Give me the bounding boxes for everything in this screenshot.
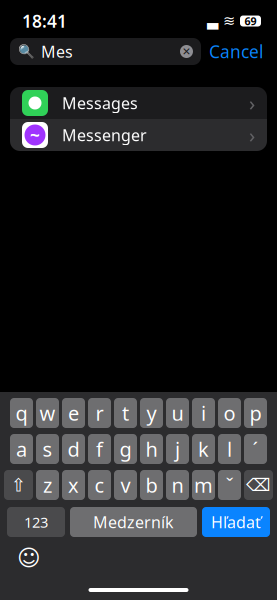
button[interactable]: i bbox=[192, 398, 215, 428]
staticText: g bbox=[119, 436, 131, 462]
staticText: y bbox=[146, 400, 156, 426]
staticText: h bbox=[145, 436, 157, 462]
staticText: v bbox=[120, 472, 130, 498]
button[interactable]: d bbox=[62, 434, 85, 464]
staticText: n bbox=[171, 472, 183, 498]
button[interactable]: Messages bbox=[10, 87, 267, 119]
staticText: o bbox=[223, 400, 235, 426]
button[interactable]: Clear text bbox=[180, 45, 193, 58]
button[interactable]: o bbox=[218, 398, 241, 428]
staticText: ⇧ bbox=[10, 474, 26, 496]
button[interactable]: ˇ bbox=[218, 470, 241, 500]
button[interactable]: Emoji bbox=[16, 545, 42, 571]
staticText: c bbox=[94, 472, 104, 498]
staticText: s bbox=[42, 436, 52, 462]
staticText: ▃ bbox=[207, 13, 218, 29]
button[interactable]: x bbox=[62, 470, 85, 500]
staticText: › bbox=[249, 90, 255, 116]
staticText: 123 bbox=[24, 512, 48, 532]
button[interactable]: n bbox=[166, 470, 189, 500]
button[interactable]: m bbox=[192, 470, 215, 500]
staticText: › bbox=[249, 122, 255, 148]
button[interactable]: Delete bbox=[244, 470, 273, 500]
button[interactable]: l bbox=[218, 434, 241, 464]
button[interactable]: c bbox=[88, 470, 111, 500]
staticText: u bbox=[171, 400, 183, 426]
staticText: ≋ bbox=[223, 13, 235, 29]
button[interactable]: z bbox=[36, 470, 59, 500]
button[interactable]: t bbox=[114, 398, 137, 428]
staticText: l bbox=[227, 436, 232, 462]
staticText: k bbox=[198, 436, 209, 462]
button[interactable]: y bbox=[140, 398, 163, 428]
button[interactable]: Cancel bbox=[201, 38, 271, 65]
staticText: Cancel bbox=[209, 40, 263, 63]
staticText: Medzerník bbox=[93, 511, 174, 533]
button[interactable]: s bbox=[36, 434, 59, 464]
staticText: ´ bbox=[252, 436, 258, 462]
staticText: 18:41 bbox=[22, 9, 67, 32]
staticText: Hľadať bbox=[211, 511, 261, 533]
staticText: 🔍 bbox=[18, 44, 35, 59]
staticText: ˇ bbox=[225, 472, 233, 498]
staticText: q bbox=[15, 400, 27, 426]
staticText: x bbox=[68, 472, 79, 498]
button[interactable]: 123 bbox=[7, 507, 65, 537]
staticText: b bbox=[145, 472, 157, 498]
button[interactable]: h bbox=[140, 434, 163, 464]
button[interactable]: p bbox=[244, 398, 267, 428]
button[interactable]: Medzerník bbox=[70, 507, 197, 537]
button[interactable]: r bbox=[88, 398, 111, 428]
staticText: z bbox=[43, 472, 52, 498]
staticText: 69 bbox=[244, 14, 256, 28]
button[interactable]: u bbox=[166, 398, 189, 428]
button[interactable]: ´ bbox=[244, 434, 267, 464]
staticText: ⌫ bbox=[246, 475, 271, 495]
button[interactable]: f bbox=[88, 434, 111, 464]
button[interactable]: Hľadať bbox=[202, 507, 270, 537]
button[interactable]: q bbox=[10, 398, 33, 428]
button[interactable]: ~ bbox=[10, 119, 267, 151]
staticText: Messages bbox=[62, 92, 138, 114]
staticText: f bbox=[96, 436, 103, 462]
staticText: ✕ bbox=[182, 45, 191, 57]
button[interactable]: b bbox=[140, 470, 163, 500]
button[interactable]: Shift bbox=[4, 470, 33, 500]
staticText: i bbox=[201, 400, 206, 426]
button[interactable]: a bbox=[10, 434, 33, 464]
staticText: Messenger bbox=[62, 124, 147, 146]
staticText: Mes bbox=[41, 41, 73, 62]
staticText: r bbox=[95, 400, 103, 426]
button[interactable]: w bbox=[36, 398, 59, 428]
button[interactable]: k bbox=[192, 434, 215, 464]
staticText: p bbox=[249, 400, 261, 426]
staticText: j bbox=[175, 436, 180, 462]
staticText: a bbox=[16, 436, 27, 462]
button[interactable]: v bbox=[114, 470, 137, 500]
button[interactable]: g bbox=[114, 434, 137, 464]
staticText: m bbox=[194, 472, 213, 498]
button[interactable]: e bbox=[62, 398, 85, 428]
staticText: d bbox=[67, 436, 79, 462]
staticText: e bbox=[68, 400, 79, 426]
staticText: w bbox=[39, 400, 55, 426]
button[interactable]: j bbox=[166, 434, 189, 464]
staticText: t bbox=[122, 400, 129, 426]
staticText: ☺ bbox=[17, 545, 41, 571]
staticText: ~ bbox=[30, 123, 40, 146]
